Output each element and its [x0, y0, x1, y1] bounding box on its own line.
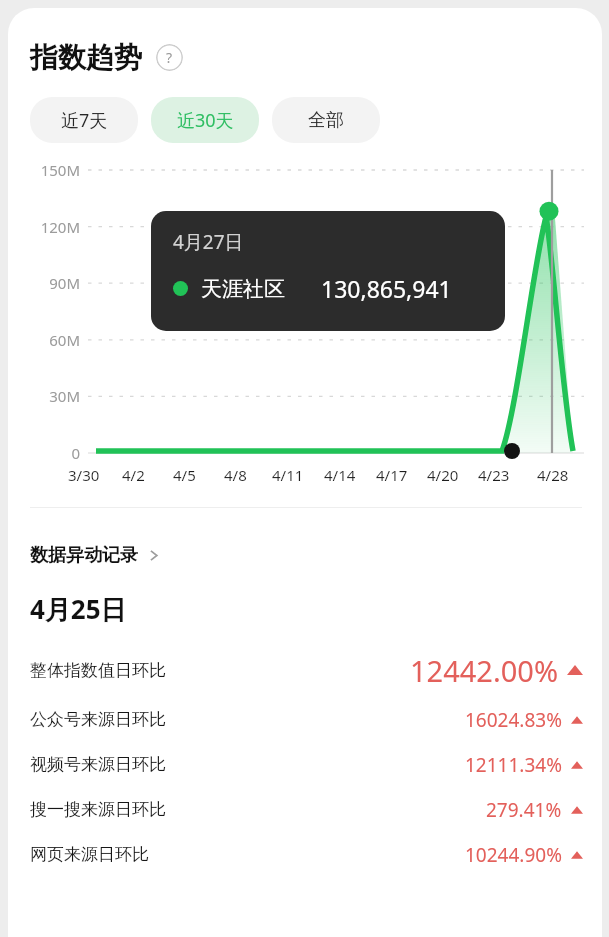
staticText: 全部	[308, 109, 344, 132]
button[interactable]: 全部	[272, 97, 380, 143]
staticText: 130,865,941	[321, 273, 452, 304]
staticText: 数据异动记录	[30, 544, 138, 567]
staticText: 12442.00%	[410, 651, 558, 690]
staticText: 4/11	[272, 465, 304, 485]
staticText: 4/8	[224, 465, 247, 485]
staticText: 天涯社区	[201, 276, 285, 302]
button[interactable]: 网页来源日环比	[8, 832, 602, 877]
staticText: 0	[8, 443, 80, 463]
button[interactable]: 近30天	[151, 97, 259, 143]
staticText: 12111.34%	[465, 752, 562, 778]
staticText: 16024.83%	[465, 707, 562, 733]
staticText: 指数趋势	[30, 40, 142, 75]
staticText: 4/20	[427, 465, 459, 485]
staticText: 4/5	[173, 465, 196, 485]
button[interactable]: 视频号来源日环比	[8, 742, 602, 787]
button[interactable]: 近7天	[30, 97, 138, 143]
staticText: 公众号来源日环比	[30, 709, 166, 730]
staticText: 4/2	[122, 465, 145, 485]
staticText: 279.41%	[486, 797, 562, 823]
staticText: 10244.90%	[465, 842, 562, 868]
staticText: 4/17	[376, 465, 408, 485]
staticText: 120M	[8, 217, 80, 237]
staticText: 4/23	[478, 465, 510, 485]
button[interactable]: 公众号来源日环比	[8, 697, 602, 742]
button[interactable]: 数据异动记录	[30, 544, 160, 567]
button[interactable]: 帮助说明	[156, 44, 183, 71]
staticText: 近7天	[61, 108, 108, 133]
staticText: 4月25日	[30, 591, 127, 627]
staticText: 搜一搜来源日环比	[30, 799, 166, 820]
button[interactable]: 搜一搜来源日环比	[8, 787, 602, 832]
staticText: 60M	[8, 330, 80, 350]
staticText: 90M	[8, 273, 80, 293]
staticText: 整体指数值日环比	[30, 660, 166, 681]
staticText: 3/30	[68, 465, 100, 485]
staticText: 网页来源日环比	[30, 844, 149, 865]
button[interactable]: 整体指数值日环比	[8, 643, 602, 697]
staticText: 4月27日	[173, 229, 244, 255]
staticText: 30M	[8, 386, 80, 406]
staticText: 150M	[8, 160, 80, 180]
staticText: 4/14	[324, 465, 356, 485]
staticText: 近30天	[177, 108, 234, 133]
staticText: 4/28	[537, 465, 569, 485]
staticText: 视频号来源日环比	[30, 754, 166, 775]
staticText: ?	[166, 48, 173, 67]
